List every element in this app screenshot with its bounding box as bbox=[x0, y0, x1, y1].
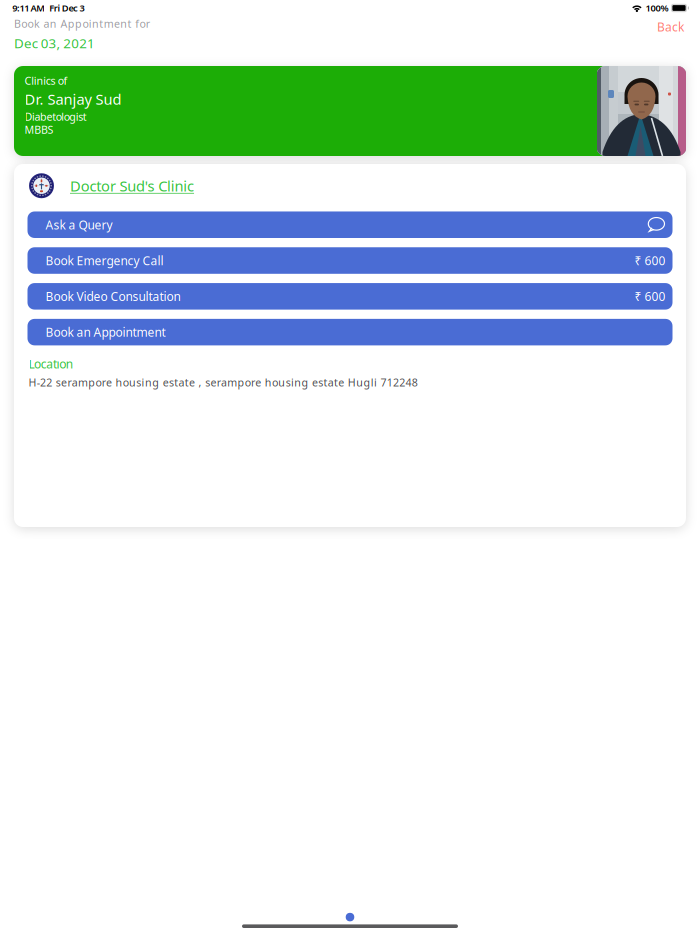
staticText: Back bbox=[657, 19, 684, 35]
staticText: Clinics of bbox=[24, 73, 67, 88]
staticText: H-22 serampore housing estate , serampor… bbox=[28, 375, 418, 389]
staticText: Fri Dec 3 bbox=[49, 2, 84, 14]
staticText: Book Video Consultation bbox=[45, 288, 180, 304]
button[interactable]: Book Video Consultation bbox=[27, 283, 672, 310]
button[interactable]: Book an Appointment bbox=[27, 319, 672, 345]
button[interactable]: Back bbox=[641, 14, 700, 40]
button[interactable]: Book Emergency Call bbox=[27, 247, 672, 274]
staticText: ₹ 600 bbox=[634, 253, 665, 268]
staticText: MBBS bbox=[24, 122, 54, 137]
staticText: Book Emergency Call bbox=[45, 253, 163, 268]
staticText: Dec 03, 2021 bbox=[14, 34, 95, 52]
button[interactable]: Doctor Sud's Clinic bbox=[54, 173, 194, 198]
staticText: Location bbox=[28, 356, 73, 372]
staticText: Diabetologist bbox=[24, 109, 87, 124]
button[interactable]: Ask a Query bbox=[27, 211, 672, 238]
staticText: ₹ 600 bbox=[634, 288, 665, 304]
staticText: 9:11 AM bbox=[12, 2, 45, 14]
staticText: Dr. Sanjay Sud bbox=[24, 89, 121, 109]
staticText: 100% bbox=[646, 2, 669, 14]
staticText: Book an Appointment for bbox=[14, 16, 150, 31]
staticText: Ask a Query bbox=[45, 217, 112, 233]
staticText: Book an Appointment bbox=[45, 324, 165, 340]
staticText: Doctor Sud's Clinic bbox=[70, 176, 194, 195]
